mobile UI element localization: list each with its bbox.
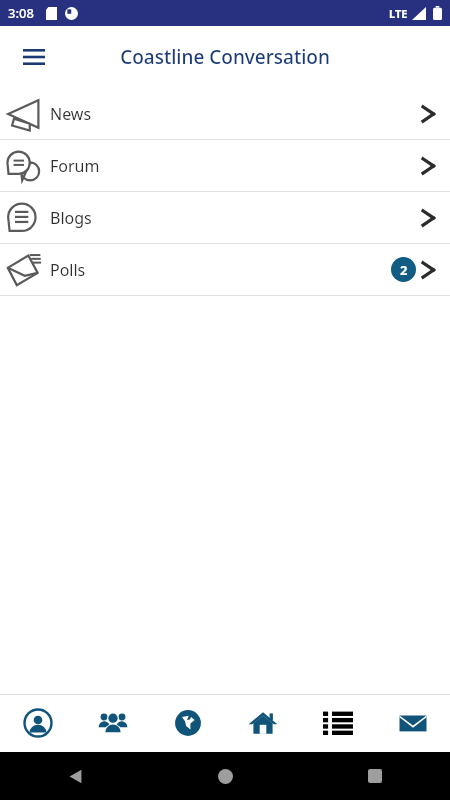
staticText: 2 (400, 261, 408, 279)
button[interactable]: Home (225, 694, 300, 752)
staticText: 3:08 (8, 4, 34, 22)
staticText: News (50, 103, 92, 125)
staticText: LTE (389, 6, 408, 21)
button[interactable]: Profile (0, 694, 75, 752)
button[interactable]: Recent apps (300, 752, 450, 800)
button[interactable]: Home (150, 752, 300, 800)
button[interactable]: Open navigation menu (12, 35, 56, 79)
staticText: Forum (50, 155, 100, 177)
button[interactable]: Explore (150, 694, 225, 752)
staticText: Polls (50, 259, 86, 281)
button[interactable]: Polls (0, 244, 450, 295)
staticText: Blogs (50, 207, 92, 229)
button[interactable]: News (0, 88, 450, 139)
button[interactable]: Blogs (0, 192, 450, 243)
button[interactable]: Messages (375, 694, 450, 752)
button[interactable]: Forum (0, 140, 450, 191)
staticText: Coastline Conversation (120, 44, 330, 70)
button[interactable]: Activity (300, 694, 375, 752)
button[interactable]: Back (0, 752, 150, 800)
button[interactable]: Groups (75, 694, 150, 752)
